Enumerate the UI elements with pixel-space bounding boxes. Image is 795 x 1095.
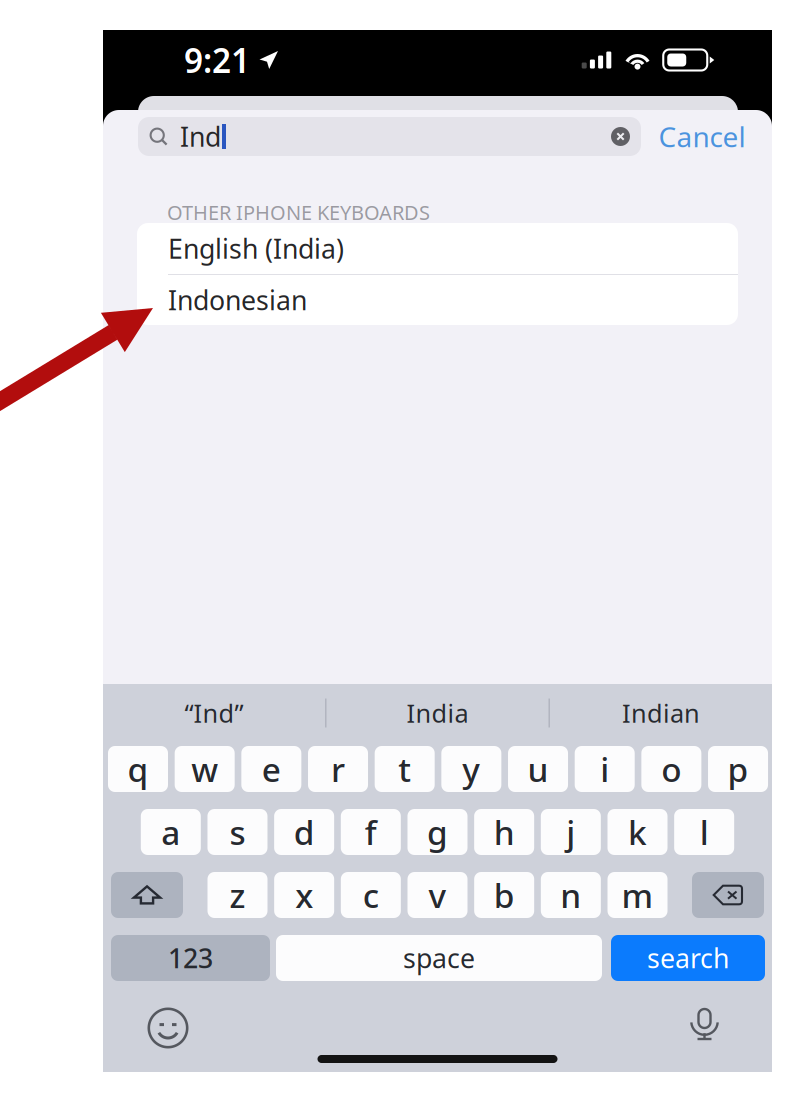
button[interactable]: q: [108, 746, 168, 792]
button[interactable]: e: [241, 746, 301, 792]
staticText: k: [628, 810, 647, 854]
button[interactable]: u: [508, 746, 568, 792]
button[interactable]: n: [541, 872, 601, 918]
button[interactable]: space: [276, 935, 602, 981]
button[interactable]: Emoji keyboard: [147, 1012, 188, 1044]
staticText: space: [403, 940, 475, 976]
button[interactable]: t: [375, 746, 435, 792]
staticText: 123: [168, 940, 213, 976]
staticText: search: [647, 940, 729, 976]
staticText: h: [494, 810, 515, 854]
staticText: u: [527, 747, 548, 791]
staticText: j: [566, 810, 575, 854]
staticText: g: [427, 810, 448, 854]
staticText: d: [294, 810, 315, 854]
staticText: o: [661, 747, 681, 791]
button[interactable]: v: [407, 872, 467, 918]
staticText: m: [621, 873, 653, 917]
button[interactable]: m: [607, 872, 667, 918]
staticText: c: [363, 873, 379, 917]
staticText: t: [398, 747, 411, 791]
staticText: l: [700, 810, 709, 854]
button[interactable]: g: [407, 809, 467, 855]
button[interactable]: w: [175, 746, 235, 792]
button[interactable]: Dictation: [688, 1006, 721, 1043]
staticText: z: [229, 873, 245, 917]
staticText: a: [161, 810, 180, 854]
staticText: “Ind”: [185, 696, 244, 730]
button[interactable]: o: [641, 746, 701, 792]
button[interactable]: h: [474, 809, 534, 855]
staticText: i: [600, 747, 609, 791]
button[interactable]: Delete: [692, 872, 764, 918]
button[interactable]: r: [308, 746, 368, 792]
staticText: 9:21: [184, 38, 250, 82]
button[interactable]: search: [611, 935, 765, 981]
button[interactable]: Clear text: [611, 127, 630, 146]
staticText: x: [295, 873, 313, 917]
staticText: Indian: [622, 696, 700, 730]
button[interactable]: Indian: [550, 684, 772, 742]
button[interactable]: Indonesian: [137, 275, 738, 325]
button[interactable]: z: [207, 872, 267, 918]
button[interactable]: k: [607, 809, 667, 855]
button[interactable]: j: [541, 809, 601, 855]
staticText: Indonesian: [168, 282, 307, 318]
button[interactable]: India: [326, 684, 548, 742]
staticText: f: [365, 810, 377, 854]
staticText: Ind: [180, 119, 221, 154]
button[interactable]: c: [341, 872, 401, 918]
staticText: r: [331, 747, 345, 791]
staticText: Cancel: [658, 118, 745, 155]
button[interactable]: l: [674, 809, 734, 855]
staticText: English (India): [168, 231, 344, 266]
staticText: n: [560, 873, 581, 917]
staticText: p: [727, 747, 748, 791]
staticText: s: [229, 810, 245, 854]
staticText: w: [191, 747, 218, 791]
button[interactable]: x: [274, 872, 334, 918]
button[interactable]: y: [441, 746, 501, 792]
staticText: q: [127, 747, 148, 791]
button[interactable]: f: [341, 809, 401, 855]
button[interactable]: s: [207, 809, 267, 855]
staticText: India: [406, 696, 468, 730]
button[interactable]: b: [474, 872, 534, 918]
button[interactable]: English (India): [137, 223, 738, 274]
button[interactable]: “Ind”: [103, 684, 325, 742]
button[interactable]: p: [708, 746, 768, 792]
button[interactable]: Cancel: [641, 117, 763, 156]
button[interactable]: a: [141, 809, 201, 855]
button[interactable]: i: [575, 746, 635, 792]
button[interactable]: Shift: [111, 872, 183, 918]
staticText: e: [262, 747, 281, 791]
staticText: v: [428, 873, 446, 917]
staticText: b: [494, 873, 515, 917]
staticText: y: [462, 747, 480, 791]
button[interactable]: 123: [111, 935, 270, 981]
staticText: OTHER IPHONE KEYBOARDS: [167, 199, 430, 226]
button[interactable]: d: [274, 809, 334, 855]
